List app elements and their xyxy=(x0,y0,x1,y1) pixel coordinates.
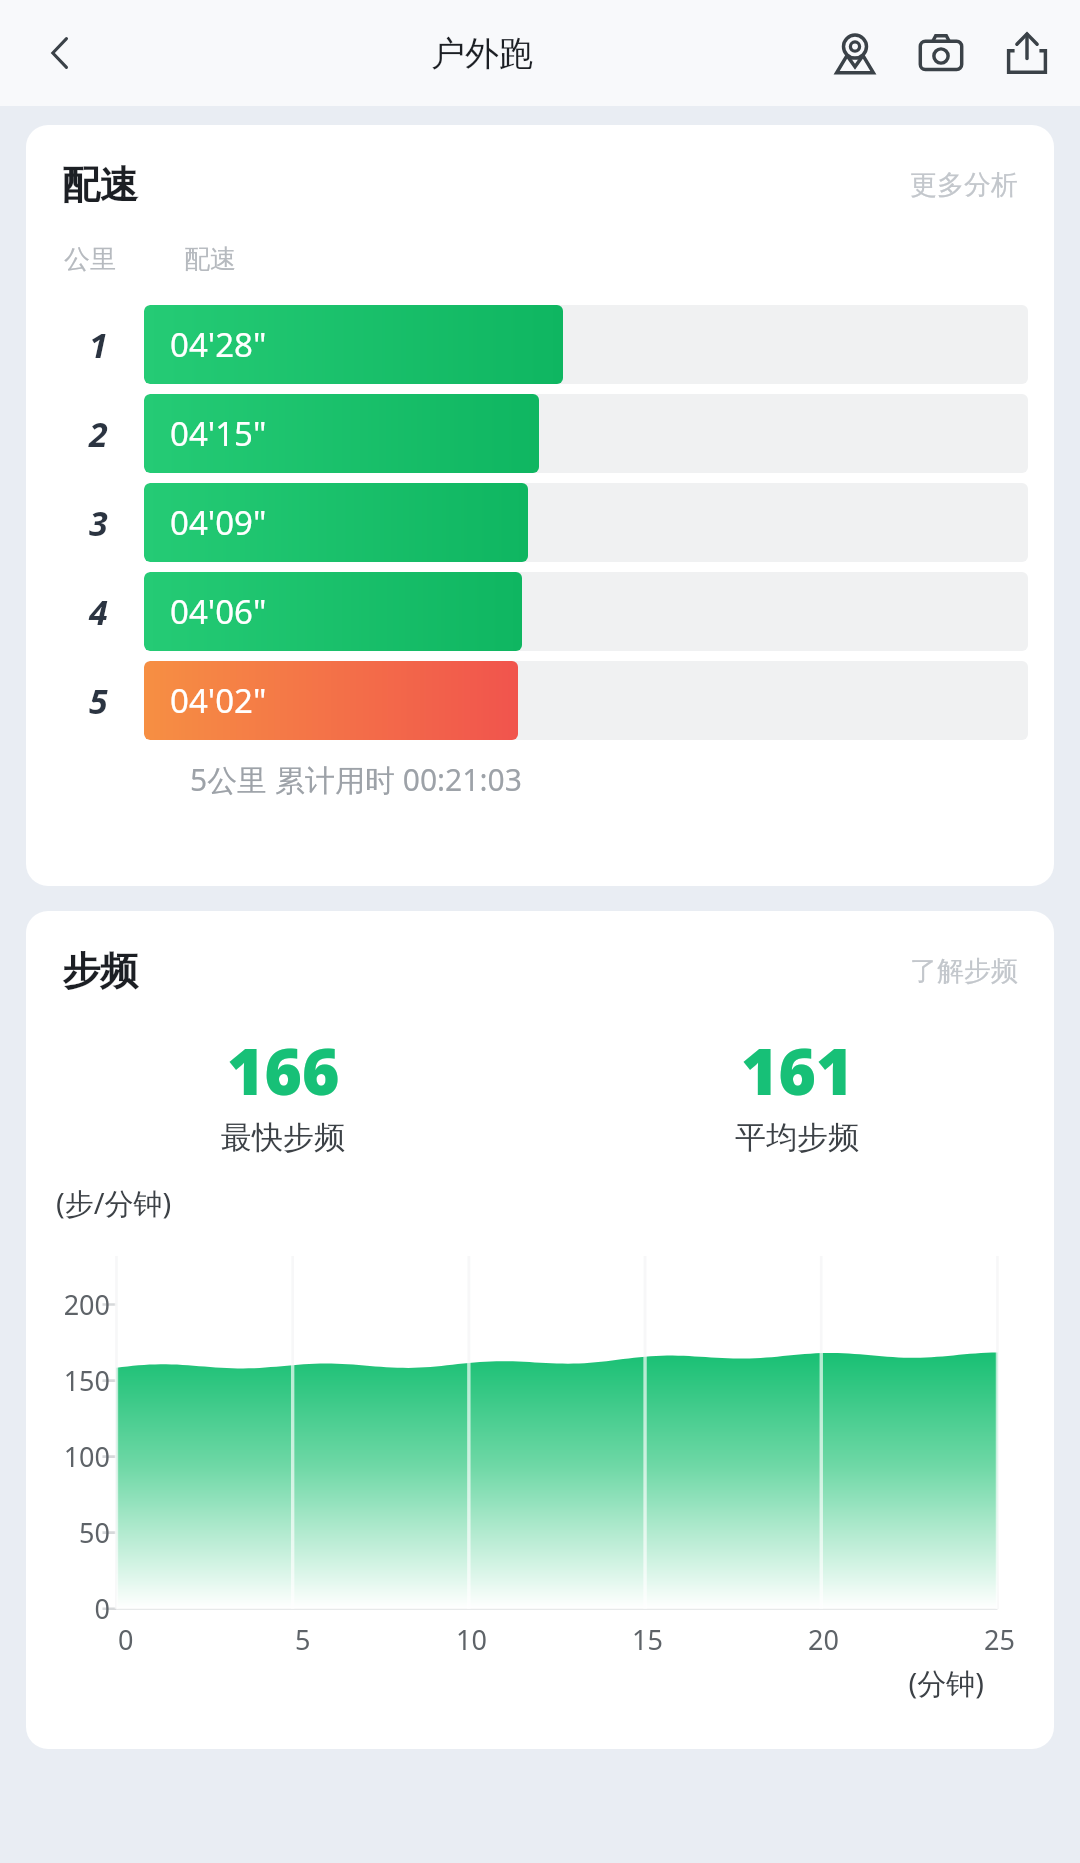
staticText: 配速 xyxy=(62,161,138,209)
staticText: 25 xyxy=(984,1621,1015,1658)
staticText: 5 xyxy=(295,1621,311,1658)
staticText: 步频 xyxy=(62,947,138,995)
staticText: (分钟) xyxy=(26,1663,984,1703)
button[interactable]: Back xyxy=(22,15,98,91)
staticText: 1 xyxy=(89,322,108,368)
staticText: 50 xyxy=(26,1514,110,1551)
button[interactable]: Share xyxy=(984,10,1070,96)
staticText: 0 xyxy=(118,1621,134,1658)
staticText: 04'28" xyxy=(170,322,267,367)
staticText: 4 xyxy=(89,589,108,635)
staticText: 平均步频 xyxy=(735,1118,859,1157)
staticText: 20 xyxy=(808,1621,839,1658)
button[interactable]: Camera xyxy=(898,10,984,96)
staticText: 0 xyxy=(26,1590,110,1627)
staticText: 150 xyxy=(26,1362,110,1399)
staticText: 04'06" xyxy=(170,589,267,634)
staticText: 04'09" xyxy=(170,500,267,545)
staticText: 户外跑 xyxy=(431,32,533,75)
staticText: 161 xyxy=(741,1027,854,1114)
staticText: 5 xyxy=(89,678,108,724)
staticText: 5公里 累计用时 00:21:03 xyxy=(190,759,522,800)
staticText: 10 xyxy=(456,1621,487,1658)
staticText: 2 xyxy=(89,411,108,457)
button[interactable]: 步频 xyxy=(26,911,1054,1749)
button[interactable]: 配速 xyxy=(26,125,1054,886)
staticText: 15 xyxy=(632,1621,663,1658)
staticText: 04'15" xyxy=(170,411,267,456)
staticText: 100 xyxy=(26,1438,110,1475)
staticText: 3 xyxy=(89,500,108,546)
button[interactable]: Location xyxy=(812,10,898,96)
staticText: 04'02" xyxy=(170,678,267,723)
staticText: 更多分析 xyxy=(910,168,1018,202)
staticText: 了解步频 xyxy=(910,954,1018,988)
staticText: 最快步频 xyxy=(221,1118,345,1157)
staticText: 166 xyxy=(227,1027,340,1114)
staticText: 公里 xyxy=(64,243,116,276)
staticText: (步/分钟) xyxy=(56,1183,172,1223)
staticText: 200 xyxy=(26,1286,110,1323)
staticText: 配速 xyxy=(184,243,236,276)
